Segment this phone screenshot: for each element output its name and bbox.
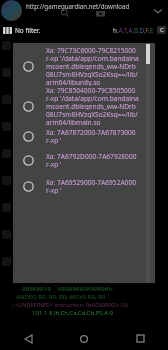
staticText: Xa: 79C8504000-79C8505000 xyxy=(46,86,136,94)
staticText: ANDEQ R0, R0, R0; MOVS R0, R0 xyxy=(16,293,106,301)
staticText: 08U7sm8HVzqXSo2Ksg==/lib/ xyxy=(46,110,138,118)
staticText: r-xp '/data/app/com.bandaina xyxy=(46,54,139,62)
button[interactable]: Recents xyxy=(112,327,168,350)
staticText: r-xp ' xyxy=(46,186,62,194)
staticText: No filter. xyxy=(15,26,41,35)
staticText: arm64/libmain.so xyxy=(46,118,101,126)
button[interactable]: Expand xyxy=(153,6,163,16)
button[interactable]: Xa: 79C73C6000-79C8215000 xyxy=(13,45,155,87)
staticText: Xa: 79C73C6000-79C8215000 xyxy=(46,46,136,54)
staticText: 08U7sm8HVzqXSo2Ksg==/lib/ xyxy=(46,70,138,78)
staticText: http://gameguardian.net/download xyxy=(26,2,130,10)
staticText: 101.1 $ Jh,Ch,Ca,Cd,Cb,PS,A 0 xyxy=(32,309,114,317)
button[interactable]: Tool xyxy=(2,122,11,131)
button[interactable]: Tool xyxy=(2,149,11,158)
button[interactable]: Camera xyxy=(96,9,105,18)
button[interactable]: Home xyxy=(56,327,112,350)
button[interactable]: No filter. xyxy=(0,24,41,36)
staticText: mcoent.dblegends_ww-NDrb xyxy=(46,62,136,70)
staticText: arm64/libunity.so xyxy=(46,78,101,86)
button[interactable]: Xa: 7A6792D000-7A6792E000 xyxy=(13,153,155,179)
staticText: ; <UNDEFINED> instruction: 0x00000000; 0… xyxy=(12,301,129,309)
button[interactable]: Tool xyxy=(2,95,11,104)
button[interactable]: Xa: 7A69529000-7A6952A000 xyxy=(13,179,155,204)
staticText: r-xp ' xyxy=(46,160,62,168)
staticText: 00000010 00000000000000h: xyxy=(22,285,116,293)
staticText: r-xp '/data/app/com.bandaina xyxy=(46,94,139,102)
staticText: h,A,T,A,B,D,F,E xyxy=(113,26,154,34)
button[interactable]: Xa: 7A67872000-7A67873000 xyxy=(13,129,155,153)
button[interactable]: Xa: 79C8504000-79C8505000 xyxy=(13,87,155,129)
staticText: Xa: 7A6792D000-7A6792E000 xyxy=(46,152,137,160)
button[interactable]: Profile xyxy=(1,0,22,21)
button[interactable]: Tool xyxy=(2,41,11,50)
staticText: Xa: 7A67872000-7A67873000 xyxy=(46,128,136,136)
staticText: Xa: 7A69529000-7A6952A000 xyxy=(46,178,136,186)
staticText: mcoent.dblegends_ww-NDrb xyxy=(46,102,136,110)
staticText: C xyxy=(160,26,164,34)
button[interactable]: Search xyxy=(60,8,70,18)
button[interactable]: C xyxy=(157,26,166,34)
button[interactable]: Tool xyxy=(2,176,11,185)
button[interactable]: Tool xyxy=(2,203,11,212)
staticText: r-xp ' xyxy=(46,136,62,144)
button[interactable]: Tool xyxy=(2,257,11,266)
button[interactable]: Tool xyxy=(2,68,11,77)
button[interactable]: Tool xyxy=(2,230,11,239)
button[interactable]: Back xyxy=(0,327,56,350)
